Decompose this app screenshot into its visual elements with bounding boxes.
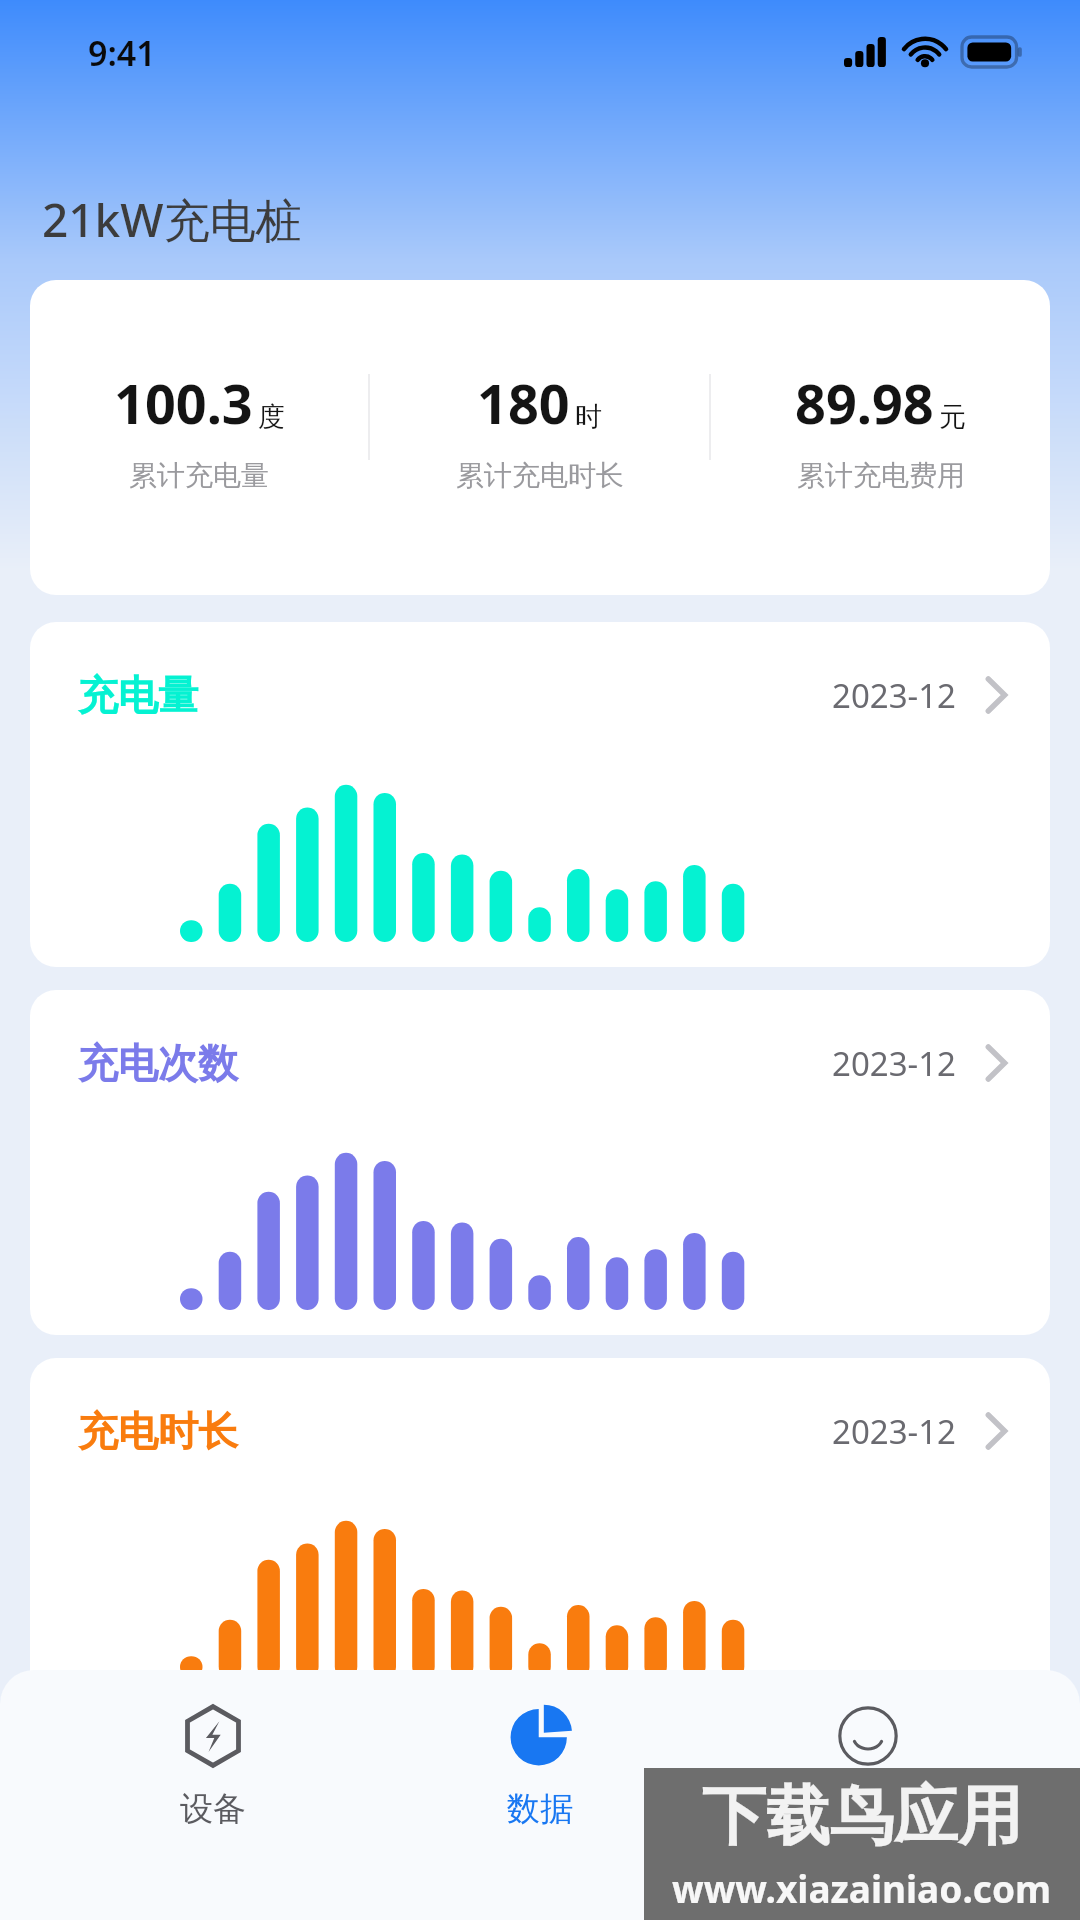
staticText: www.xiazainiao.com (672, 1863, 1052, 1913)
staticText: 2023-12 (832, 1409, 956, 1454)
staticText: 9:41 (88, 30, 156, 76)
other: 查看充电量详情 (984, 676, 1008, 714)
staticText: 时 (575, 400, 602, 434)
staticText: 100.3 (114, 366, 253, 440)
button[interactable]: 充电时长 (30, 1358, 1050, 1703)
staticText: 下载鸟应用 (702, 1776, 1022, 1857)
button[interactable]: 充电次数 (30, 990, 1050, 1335)
staticText: 累计充电时长 (456, 458, 624, 493)
staticText: 累计充电费用 (797, 458, 965, 493)
other: 查看充电次数详情 (984, 1044, 1008, 1082)
staticText: 我的 (835, 1788, 901, 1830)
staticText: 180 (477, 366, 570, 440)
staticText: 数据 (507, 1788, 573, 1830)
staticText: 21kW充电桩 (42, 188, 302, 251)
staticText: 2023-12 (832, 673, 956, 718)
staticText: 度 (258, 400, 285, 434)
button[interactable]: 充电量 (30, 622, 1050, 967)
staticText: 89.98 (795, 366, 934, 440)
other: 查看充电时长详情 (984, 1412, 1008, 1450)
staticText: 设备 (180, 1788, 246, 1830)
button[interactable]: 数据 (425, 1696, 655, 1838)
button[interactable]: 设备 (98, 1696, 328, 1838)
staticText: 2023-12 (832, 1041, 956, 1086)
staticText: 充电次数 (78, 1038, 238, 1088)
staticText: 充电量 (78, 670, 198, 720)
staticText: 累计充电量 (129, 458, 269, 493)
staticText: 元 (939, 400, 966, 434)
staticText: 充电时长 (78, 1406, 238, 1456)
button[interactable]: 我的 (753, 1696, 983, 1838)
